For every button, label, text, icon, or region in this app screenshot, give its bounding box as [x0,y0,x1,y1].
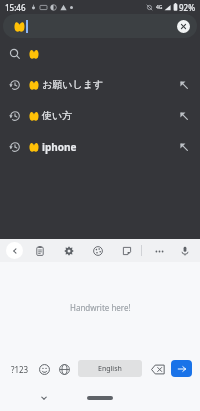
staticText: iphone [42,140,77,154]
staticText: English [98,364,122,374]
button[interactable]: Enter [171,360,192,377]
button[interactable]: English [78,360,142,377]
staticText: 使い方 [42,109,73,122]
button[interactable]: Themes [90,243,106,259]
button[interactable]: Settings [61,243,77,259]
staticText: 92% [179,2,195,13]
button[interactable]: ?123 [6,359,34,379]
staticText: 15:46 [5,2,26,13]
button[interactable]: Emoji [34,359,54,379]
button[interactable]: Clipboard [32,243,48,259]
button[interactable] [0,38,200,69]
button[interactable]: お願いします [0,69,200,100]
button[interactable]: 使い方 [0,100,200,131]
staticText: Handwrite here! [70,302,131,313]
staticText: お願いします [42,78,104,91]
button[interactable]: Backspace [148,359,168,379]
button[interactable]: Hide keyboard [38,392,50,404]
button[interactable]: Clear [177,20,190,33]
staticText: ?123 [11,364,29,375]
button[interactable]: Language [54,359,74,379]
button[interactable]: iphone [0,131,200,162]
staticText: 4G [156,4,163,11]
button[interactable]: Clear [3,14,197,38]
button[interactable]: Back [6,242,23,259]
button[interactable]: Voice input [177,243,193,259]
button[interactable]: More [151,243,167,259]
button[interactable]: Stickers [119,243,135,259]
